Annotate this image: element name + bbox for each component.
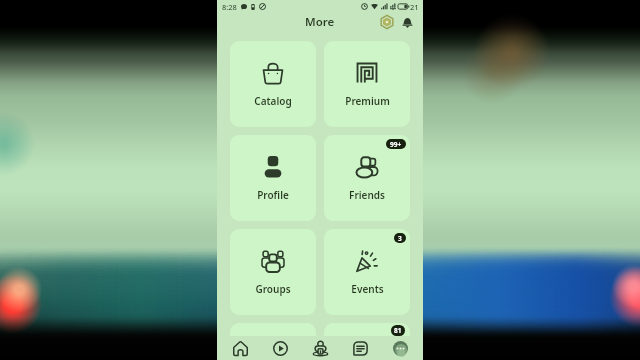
staticText: Events bbox=[351, 282, 384, 296]
staticText: More bbox=[305, 14, 335, 30]
button[interactable]: Trade bbox=[324, 323, 410, 360]
staticText: Friends bbox=[349, 188, 385, 202]
button[interactable]: Notifications bbox=[399, 14, 415, 30]
staticText: Groups bbox=[255, 282, 291, 296]
button[interactable]: Friends bbox=[324, 135, 410, 221]
staticText: 99+ bbox=[390, 140, 402, 149]
staticText: 8:28 bbox=[222, 2, 237, 12]
button[interactable]: Premium currency bbox=[379, 14, 395, 30]
button[interactable]: Premium bbox=[324, 41, 410, 127]
button[interactable]: Avatar bbox=[230, 323, 316, 360]
button[interactable]: Home bbox=[223, 336, 257, 360]
staticText: Premium bbox=[345, 94, 390, 108]
button[interactable]: Profile bbox=[383, 336, 417, 360]
button[interactable]: Play bbox=[263, 336, 297, 360]
button[interactable]: Catalog bbox=[230, 41, 316, 127]
staticText: Profile bbox=[257, 188, 289, 202]
button[interactable]: Groups bbox=[230, 229, 316, 315]
button[interactable]: Events bbox=[324, 229, 410, 315]
button[interactable]: Chat bbox=[343, 336, 377, 360]
staticText: Catalog bbox=[254, 94, 292, 108]
button[interactable]: Profile bbox=[230, 135, 316, 221]
staticText: 81 bbox=[394, 326, 402, 335]
button[interactable]: Avatar bbox=[303, 336, 337, 360]
staticText: 21 bbox=[410, 2, 419, 12]
staticText: 3 bbox=[398, 234, 402, 243]
